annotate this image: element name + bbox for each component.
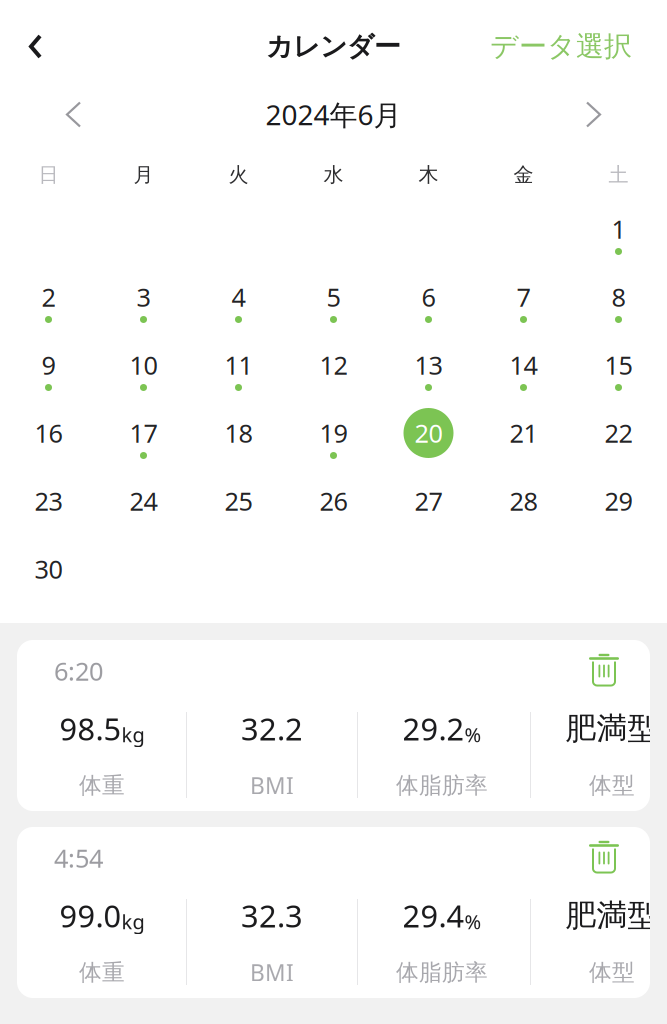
staticText: 水 — [323, 162, 343, 187]
staticText: BMI — [250, 957, 294, 987]
button[interactable]: 21 — [476, 411, 571, 479]
staticText: 体脂肪率 — [396, 772, 488, 799]
button[interactable]: Back — [0, 22, 62, 71]
staticText: 6 — [421, 280, 435, 314]
staticText: 19 — [319, 416, 347, 450]
staticText: 木 — [418, 162, 438, 187]
staticText: 28 — [509, 484, 537, 518]
button[interactable]: 12 — [286, 343, 381, 411]
button[interactable]: Previous month — [0, 93, 104, 135]
staticText: 10 — [129, 348, 157, 382]
staticText: 体型 — [589, 959, 635, 986]
staticText: 27 — [414, 484, 442, 518]
staticText: kg — [121, 908, 144, 935]
staticText: 18 — [224, 416, 252, 450]
staticText: kg — [121, 721, 144, 748]
button[interactable]: 29 — [571, 479, 666, 547]
button[interactable]: 19 — [286, 411, 381, 479]
staticText: データ選択 — [490, 29, 632, 64]
staticText: 肥満型 — [565, 710, 658, 747]
button[interactable]: 3 — [96, 275, 191, 343]
staticText: 肥満型 — [565, 897, 658, 934]
button[interactable]: 28 — [476, 479, 571, 547]
staticText: 7 — [516, 280, 530, 314]
button[interactable]: 20 — [381, 411, 476, 479]
staticText: 29 — [604, 484, 632, 518]
staticText: 21 — [509, 416, 537, 450]
staticText: 13 — [414, 348, 442, 382]
staticText: 17 — [129, 416, 157, 450]
button[interactable]: 4 — [191, 275, 286, 343]
staticText: 24 — [129, 484, 157, 518]
staticText: 6:20 — [54, 654, 103, 688]
button[interactable]: 5 — [286, 275, 381, 343]
button[interactable]: 18 — [191, 411, 286, 479]
staticText: 2 — [41, 280, 55, 314]
button[interactable]: 24 — [96, 479, 191, 547]
staticText: 98.5 — [59, 708, 121, 749]
staticText: 29.2 — [402, 708, 464, 749]
staticText: 2024年6月 — [265, 96, 401, 133]
button[interactable]: 8 — [571, 275, 666, 343]
button[interactable]: 30 — [1, 547, 96, 615]
staticText: 12 — [319, 348, 347, 382]
button[interactable]: Delete record — [587, 654, 621, 688]
staticText: 9 — [41, 348, 55, 382]
staticText: 金 — [513, 162, 533, 187]
button[interactable]: 6 — [381, 275, 476, 343]
staticText: 日 — [38, 162, 58, 187]
staticText: 体型 — [589, 772, 635, 799]
staticText: 8 — [611, 280, 625, 314]
staticText: 1 — [611, 212, 625, 246]
staticText: カレンダー — [266, 30, 401, 63]
staticText: 26 — [319, 484, 347, 518]
button[interactable]: 11 — [191, 343, 286, 411]
button[interactable]: 2 — [1, 275, 96, 343]
button[interactable]: 15 — [571, 343, 666, 411]
button[interactable]: 10 — [96, 343, 191, 411]
staticText: 土 — [608, 162, 628, 187]
staticText: % — [464, 721, 481, 748]
button[interactable]: 17 — [96, 411, 191, 479]
button[interactable]: 1 — [571, 207, 666, 275]
button[interactable]: 7 — [476, 275, 571, 343]
button[interactable]: 16 — [1, 411, 96, 479]
staticText: 14 — [509, 348, 537, 382]
button[interactable]: 23 — [1, 479, 96, 547]
button[interactable]: Next month — [563, 93, 667, 135]
staticText: 32.3 — [241, 895, 303, 936]
button[interactable]: 27 — [381, 479, 476, 547]
button[interactable]: Delete record — [587, 841, 621, 875]
button[interactable]: 22 — [571, 411, 666, 479]
staticText: 3 — [136, 280, 150, 314]
button[interactable]: 26 — [286, 479, 381, 547]
staticText: 99.0 — [59, 895, 121, 936]
staticText: BMI — [250, 770, 294, 800]
staticText: 体重 — [79, 772, 125, 799]
staticText: 22 — [604, 416, 632, 450]
button[interactable]: 13 — [381, 343, 476, 411]
button[interactable]: 14 — [476, 343, 571, 411]
staticText: 20 — [414, 416, 442, 450]
button[interactable]: 9 — [1, 343, 96, 411]
staticText: 体重 — [79, 959, 125, 986]
staticText: 32.2 — [241, 708, 303, 749]
staticText: 30 — [34, 552, 62, 586]
staticText: 5 — [326, 280, 340, 314]
staticText: 29.4 — [402, 895, 464, 936]
staticText: 月 — [133, 162, 153, 187]
staticText: 25 — [224, 484, 252, 518]
staticText: 15 — [604, 348, 632, 382]
staticText: 4 — [231, 280, 245, 314]
staticText: 体脂肪率 — [396, 959, 488, 986]
staticText: 16 — [34, 416, 62, 450]
staticText: 4:54 — [54, 841, 103, 875]
staticText: % — [464, 908, 481, 935]
button[interactable]: データ選択 — [470, 15, 667, 78]
staticText: 11 — [224, 348, 252, 382]
staticText: 23 — [34, 484, 62, 518]
button[interactable]: 25 — [191, 479, 286, 547]
staticText: 火 — [228, 162, 248, 187]
